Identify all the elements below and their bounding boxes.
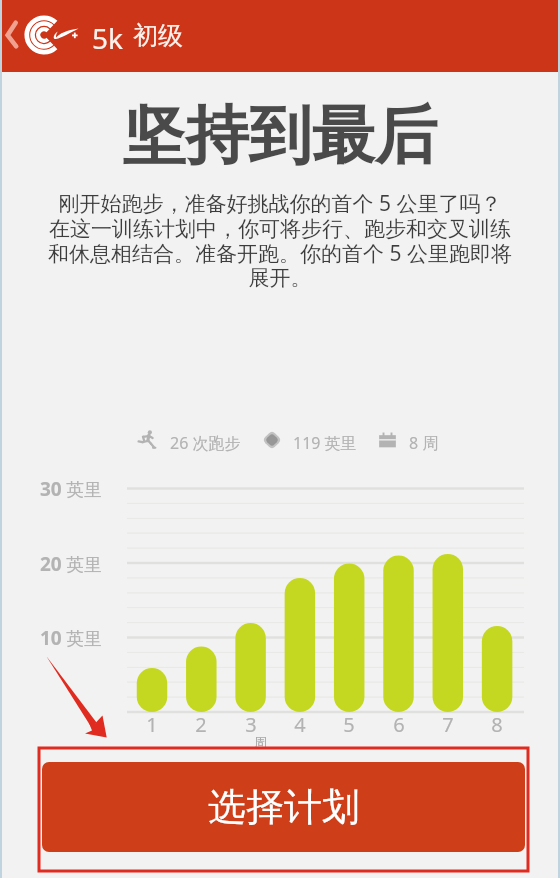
- staticText: 英里: [66, 479, 102, 502]
- staticText: 20: [40, 551, 62, 577]
- staticText: 6: [379, 711, 419, 738]
- staticText: 刚开始跑步，准备好挑战你的首个 5 公里了吗？ 在这一训练计划中，你可将步行、跑…: [0, 189, 560, 291]
- staticText: 7: [428, 711, 468, 738]
- staticText: 2: [181, 711, 221, 738]
- staticText: 8 周: [409, 432, 439, 454]
- staticText: 26 次跑步: [170, 432, 241, 454]
- staticText: 选择计划: [208, 783, 360, 831]
- staticText: 英里: [66, 554, 102, 577]
- staticText: 1: [132, 711, 172, 738]
- staticText: 英里: [66, 628, 102, 651]
- staticText: 5k: [92, 19, 123, 57]
- staticText: 初级: [133, 20, 183, 51]
- staticText: 8: [477, 711, 517, 738]
- staticText: 10: [40, 625, 62, 651]
- staticText: 119 英里: [293, 432, 357, 454]
- staticText: 30: [40, 476, 62, 502]
- staticText: 4: [280, 711, 320, 738]
- staticText: 坚持到最后: [0, 96, 560, 175]
- button[interactable]: 选择计划: [42, 762, 525, 852]
- button[interactable]: Back: [0, 14, 26, 58]
- staticText: 3: [231, 711, 271, 738]
- staticText: 5: [329, 711, 369, 738]
- staticText: 周: [254, 734, 267, 750]
